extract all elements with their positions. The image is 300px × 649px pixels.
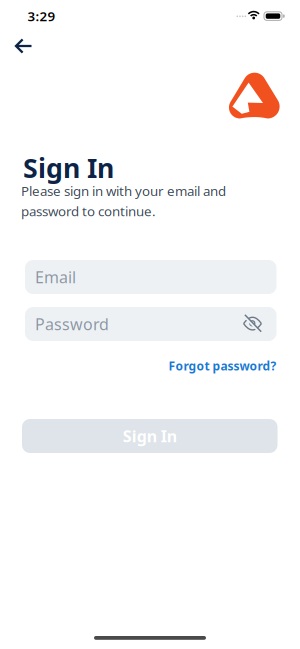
staticText: 3:29 (27, 7, 55, 25)
button[interactable]: Password (25, 307, 276, 341)
button[interactable]: Email (25, 260, 276, 294)
staticText: Email (35, 266, 76, 288)
button[interactable]: Show password (238, 309, 268, 339)
staticText: Please sign in with your email and passw… (21, 182, 226, 220)
staticText: Password (35, 313, 109, 335)
staticText: Sign In (23, 150, 114, 185)
staticText: Forgot password? (168, 358, 276, 374)
button[interactable]: Sign In (22, 419, 277, 453)
button[interactable]: Back (6, 29, 42, 63)
staticText: Sign In (123, 425, 177, 447)
button[interactable]: Forgot password? (168, 358, 276, 374)
